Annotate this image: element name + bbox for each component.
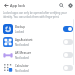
- staticText: Not locked: [15, 56, 29, 60]
- staticText: Locked: [15, 30, 24, 34]
- staticText: Calculator: [15, 64, 29, 68]
- button[interactable]: Search: [57, 1, 65, 9]
- staticText: Not locked: [15, 43, 29, 47]
- button[interactable]: Lock off: [63, 39, 73, 45]
- button[interactable]: Back: [2, 1, 10, 9]
- button[interactable]: Calculator: [0, 61, 75, 74]
- staticText: Backup: [15, 25, 25, 29]
- staticText: Locked apps can only be opened after ver…: [3, 11, 73, 19]
- button[interactable]: Lock off: [63, 65, 73, 71]
- staticText: App lock: [10, 3, 26, 8]
- button[interactable]: Settings: [66, 1, 74, 9]
- staticText: Not locked: [15, 69, 29, 73]
- staticText: AppAssistant: [15, 38, 33, 42]
- button[interactable]: Backup: [0, 22, 75, 35]
- button[interactable]: AppAssistant: [0, 35, 75, 48]
- button[interactable]: Lock on: [63, 26, 73, 32]
- button[interactable]: Lock off: [63, 52, 73, 58]
- staticText: AR Measure: [15, 51, 32, 55]
- button[interactable]: AR Measure: [0, 48, 75, 61]
